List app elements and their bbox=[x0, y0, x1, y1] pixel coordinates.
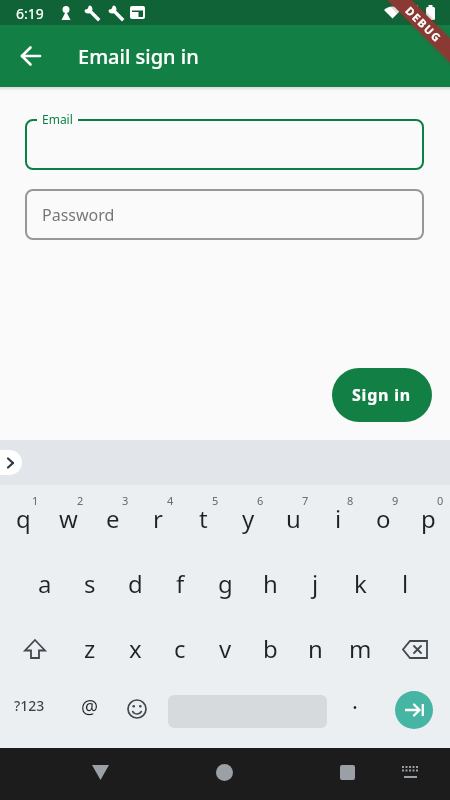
button[interactable]: @ bbox=[81, 694, 99, 720]
staticText: x bbox=[129, 632, 142, 665]
button[interactable]: j bbox=[293, 561, 337, 605]
staticText: 2 bbox=[77, 493, 84, 508]
button[interactable]: k bbox=[338, 561, 382, 605]
staticText: w bbox=[59, 502, 78, 535]
button[interactable]: o bbox=[361, 496, 405, 540]
button[interactable] bbox=[127, 699, 147, 719]
staticText: e bbox=[106, 502, 120, 535]
staticText: t bbox=[199, 502, 208, 535]
staticText: c bbox=[174, 632, 186, 665]
button[interactable]: e bbox=[91, 496, 135, 540]
staticText: h bbox=[263, 567, 278, 600]
button[interactable]: l bbox=[383, 561, 427, 605]
staticText: d bbox=[128, 567, 143, 600]
button[interactable]: s bbox=[68, 561, 112, 605]
button[interactable]: t bbox=[181, 496, 225, 540]
staticText: 4 bbox=[167, 493, 174, 508]
staticText: 0 bbox=[437, 493, 444, 508]
staticText: 9 bbox=[392, 493, 399, 508]
staticText: 7 bbox=[302, 493, 309, 508]
button[interactable] bbox=[20, 45, 42, 67]
button[interactable]: c bbox=[158, 626, 202, 670]
button[interactable]: x bbox=[113, 626, 157, 670]
staticText: o bbox=[376, 502, 391, 535]
staticText: Email bbox=[42, 111, 73, 127]
button[interactable]: u bbox=[271, 496, 315, 540]
staticText: y bbox=[242, 502, 255, 535]
staticText: z bbox=[84, 632, 96, 665]
button[interactable]: h bbox=[248, 561, 292, 605]
staticText: l bbox=[402, 567, 409, 600]
button[interactable]: i bbox=[316, 496, 360, 540]
staticText: j bbox=[312, 567, 319, 600]
staticText: q bbox=[16, 502, 31, 535]
button[interactable]: y bbox=[226, 496, 270, 540]
staticText: v bbox=[219, 632, 232, 665]
button[interactable]: d bbox=[113, 561, 157, 605]
button[interactable] bbox=[0, 450, 22, 475]
staticText: 5 bbox=[212, 493, 219, 508]
button[interactable] bbox=[340, 765, 355, 780]
staticText: m bbox=[349, 632, 372, 665]
button[interactable] bbox=[216, 764, 233, 781]
button[interactable]: Password bbox=[25, 189, 424, 240]
staticText: p bbox=[421, 502, 436, 535]
staticText: Sign in bbox=[352, 384, 412, 406]
button[interactable] bbox=[402, 640, 429, 659]
staticText: DEBUG bbox=[402, 3, 445, 46]
button[interactable]: . bbox=[352, 685, 358, 715]
button[interactable] bbox=[395, 691, 433, 729]
staticText: 6 bbox=[257, 493, 264, 508]
button[interactable] bbox=[92, 765, 109, 780]
button[interactable]: r bbox=[136, 496, 180, 540]
staticText: n bbox=[308, 632, 323, 665]
button[interactable]: g bbox=[203, 561, 247, 605]
staticText: b bbox=[263, 632, 278, 665]
staticText: r bbox=[153, 502, 163, 535]
button[interactable]: f bbox=[158, 561, 202, 605]
staticText: Password bbox=[42, 204, 115, 226]
staticText: 6:19 bbox=[16, 4, 44, 23]
button[interactable]: a bbox=[23, 561, 67, 605]
staticText: f bbox=[176, 567, 185, 600]
staticText: i bbox=[335, 502, 342, 535]
button[interactable] bbox=[402, 766, 420, 780]
staticText: u bbox=[286, 502, 301, 535]
button[interactable]: b bbox=[248, 626, 292, 670]
button[interactable] bbox=[25, 119, 424, 170]
staticText: k bbox=[354, 567, 367, 600]
button[interactable]: q bbox=[1, 496, 45, 540]
staticText: 3 bbox=[122, 493, 129, 508]
button[interactable]: m bbox=[338, 626, 382, 670]
button[interactable] bbox=[22, 637, 48, 663]
staticText: 1 bbox=[32, 493, 39, 508]
staticText: 8 bbox=[347, 493, 354, 508]
button[interactable]: p bbox=[406, 496, 450, 540]
button[interactable]: Sign in bbox=[332, 368, 432, 422]
button[interactable]: w bbox=[46, 496, 90, 540]
button[interactable]: z bbox=[68, 626, 112, 670]
staticText: g bbox=[218, 567, 233, 600]
staticText: s bbox=[84, 567, 96, 600]
staticText: a bbox=[38, 567, 52, 600]
staticText: Email sign in bbox=[78, 43, 199, 70]
button[interactable]: n bbox=[293, 626, 337, 670]
button[interactable]: v bbox=[203, 626, 247, 670]
button[interactable]: ?123 bbox=[14, 696, 45, 715]
